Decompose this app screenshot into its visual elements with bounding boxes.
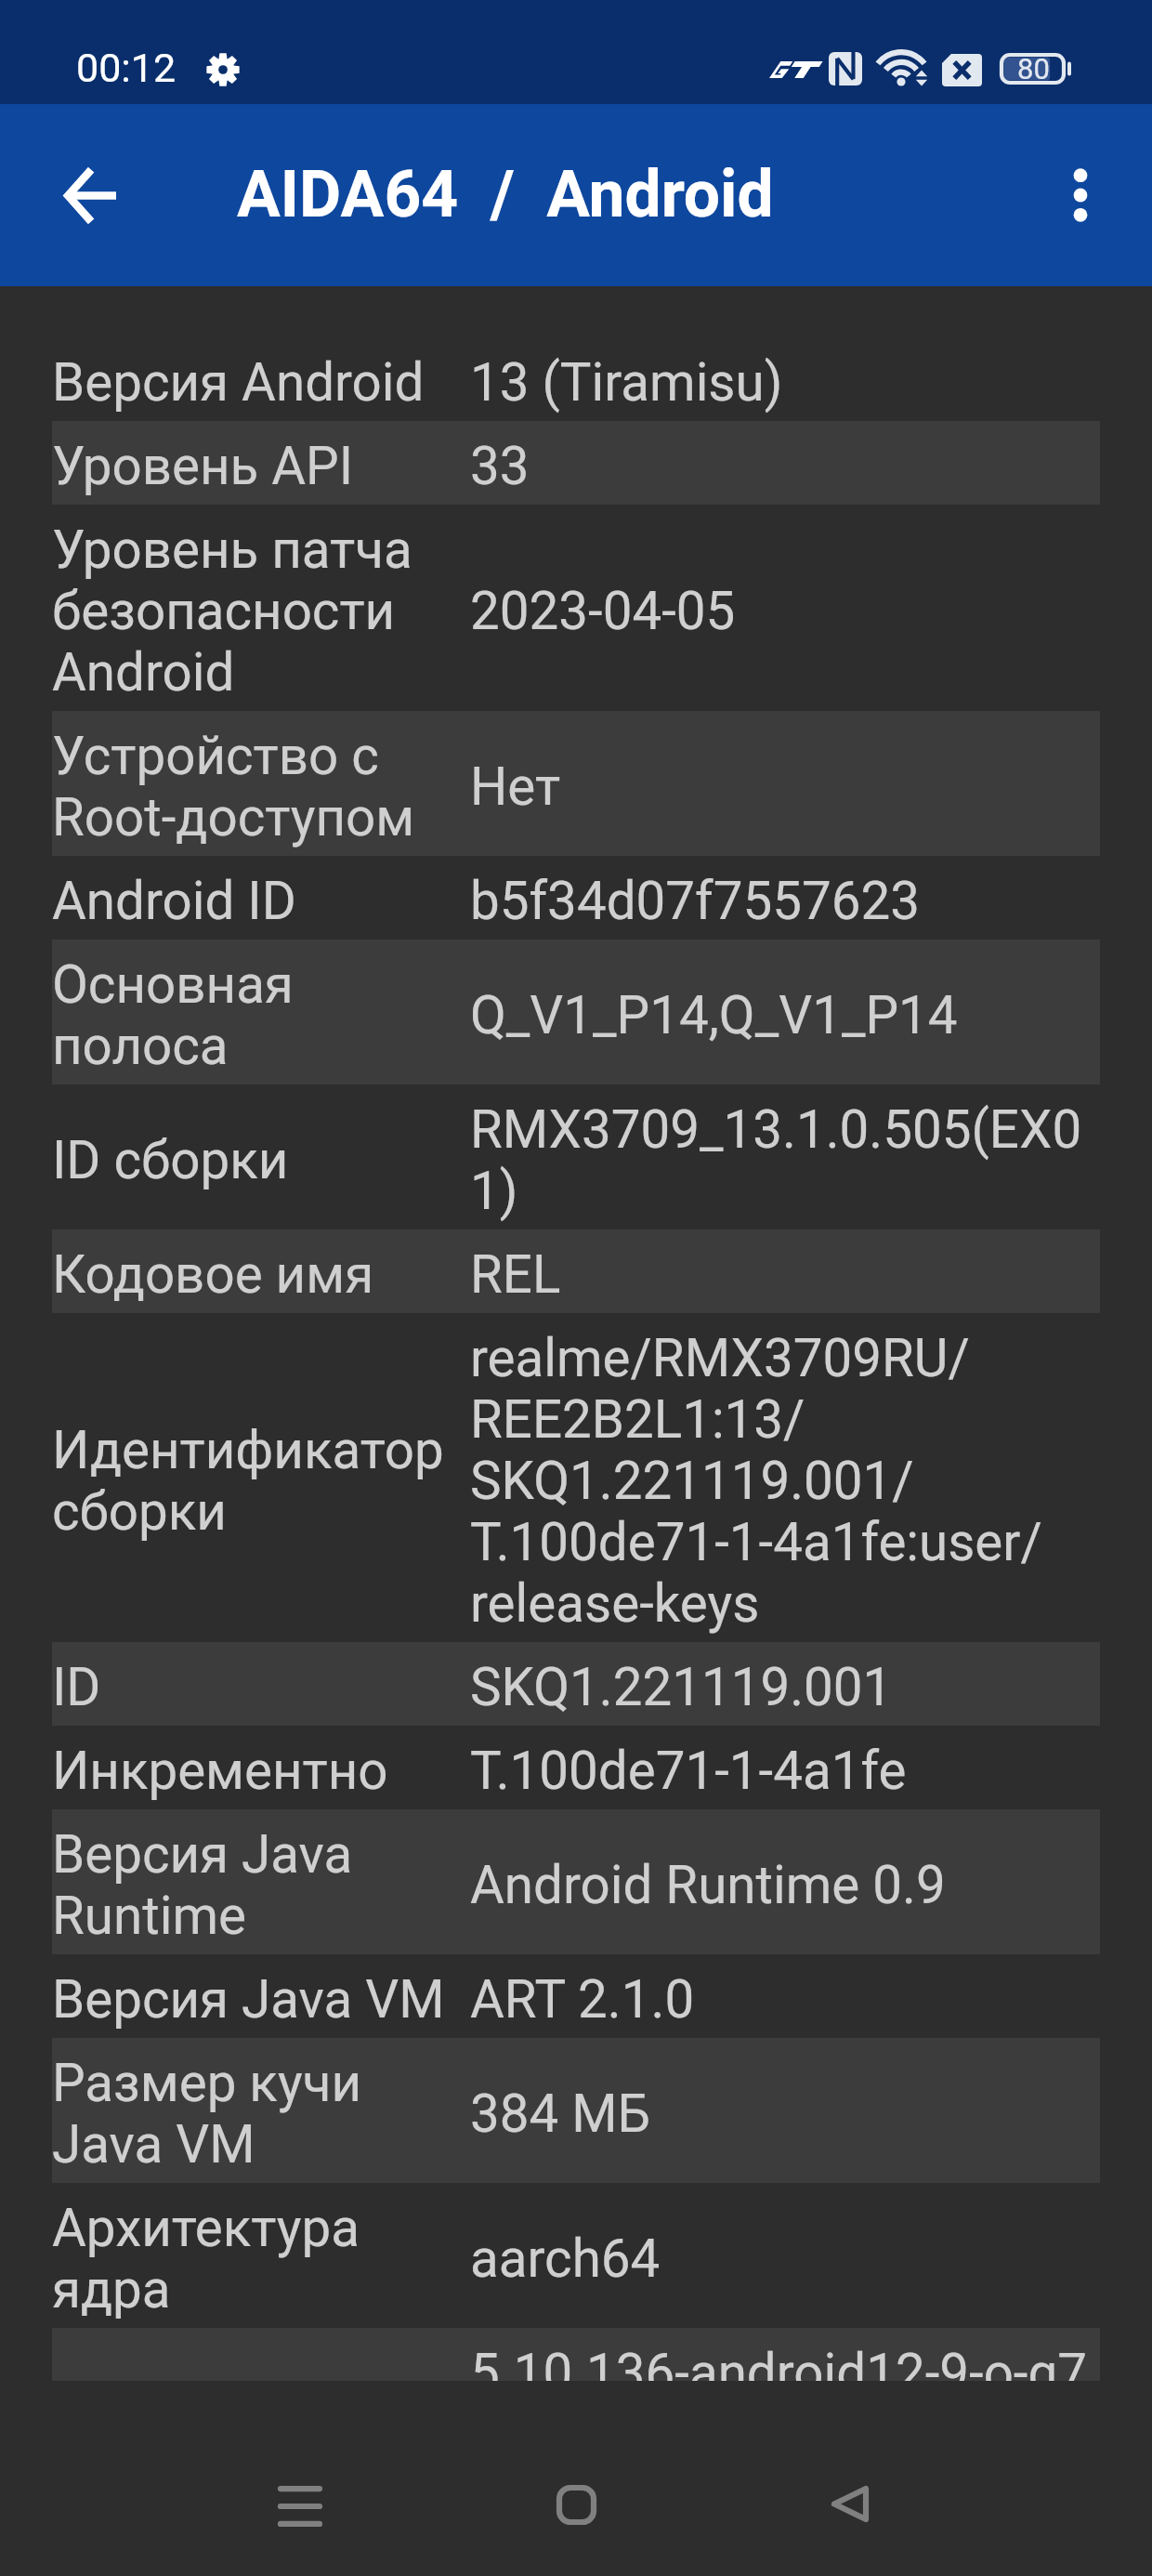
staticText: Android Runtime 0.9 — [470, 1855, 946, 1916]
button[interactable]: Версия ядра — [52, 2328, 1100, 2381]
staticText: Основная полоса — [52, 954, 470, 1077]
staticText: Версия Java Runtime — [52, 1824, 470, 1947]
staticText: Версия Java VM — [52, 1969, 470, 2031]
staticText: Кодовое имя — [52, 1244, 470, 1306]
staticText: b5f34d07f7557623 — [470, 871, 920, 932]
button[interactable]: Recent apps — [235, 2441, 365, 2571]
button[interactable]: Android ID — [52, 856, 1100, 940]
staticText: ID сборки — [52, 1130, 470, 1191]
staticText: 80 — [1017, 52, 1050, 84]
staticText: Инкрементно — [52, 1741, 470, 1802]
staticText: AIDA64 / Android — [237, 157, 774, 232]
staticText: 33 — [470, 436, 530, 497]
button[interactable]: Версия Java VM — [52, 1954, 1100, 2038]
staticText: Нет — [470, 756, 561, 818]
button[interactable]: Home — [511, 2439, 641, 2569]
staticText: 00:12 — [76, 45, 177, 91]
button[interactable]: Размер кучи Java VM — [52, 2038, 1100, 2183]
button[interactable]: Устройство с Root-доступом — [52, 711, 1100, 856]
staticText: 2023-04-05 — [470, 581, 736, 642]
staticText: 384 МБ — [470, 2083, 651, 2145]
staticText: Уровень патча безопасности Android — [52, 519, 470, 703]
button[interactable]: More options — [1025, 139, 1136, 251]
button[interactable]: Версия Android — [52, 337, 1100, 421]
staticText: ID — [52, 1657, 470, 1718]
button[interactable]: Версия Java Runtime — [52, 1809, 1100, 1954]
staticText: aarch64 — [470, 2228, 661, 2290]
button[interactable]: Идентификатор сборки — [52, 1313, 1100, 1642]
staticText: Q_V1_P14,Q_V1_P14 — [470, 985, 958, 1046]
staticText: REL — [470, 1244, 561, 1306]
button[interactable]: Уровень патча безопасности Android — [52, 505, 1100, 711]
staticText: Версия Android — [52, 352, 470, 414]
button[interactable]: ID — [52, 1642, 1100, 1726]
staticText: 13 (Tiramisu) — [470, 352, 783, 414]
staticText: SKQ1.221119.001 — [470, 1657, 893, 1718]
button[interactable]: Архитектура ядра — [52, 2183, 1100, 2328]
staticText: RMX3709_13.1.0.505(EX01) — [470, 1099, 1100, 1222]
staticText: Архитектура ядра — [52, 2198, 470, 2320]
staticText: ART 2.1.0 — [470, 1969, 695, 2031]
staticText: 5.10.136-android12-9-o-g7 c6c8b5a6d — [470, 2343, 1087, 2381]
staticText: Android ID — [52, 871, 470, 932]
staticText: Размер кучи Java VM — [52, 2053, 470, 2175]
button[interactable]: Back — [34, 139, 146, 251]
button[interactable]: Уровень API — [52, 421, 1100, 505]
button[interactable]: Инкрементно — [52, 1726, 1100, 1809]
button[interactable]: Кодовое имя — [52, 1229, 1100, 1313]
button[interactable]: ID сборки — [52, 1084, 1100, 1229]
staticText: Идентификатор сборки — [52, 1420, 470, 1543]
button[interactable]: Основная полоса — [52, 940, 1100, 1084]
staticText: T.100de71-1-4a1fe — [470, 1741, 907, 1802]
staticText: Уровень API — [52, 436, 470, 497]
staticText: realme/RMX3709RU/REE2B2L1:13/SKQ1.221119… — [470, 1328, 1100, 1635]
button[interactable]: Back — [785, 2438, 915, 2569]
staticText: Устройство с Root-доступом — [52, 726, 470, 848]
